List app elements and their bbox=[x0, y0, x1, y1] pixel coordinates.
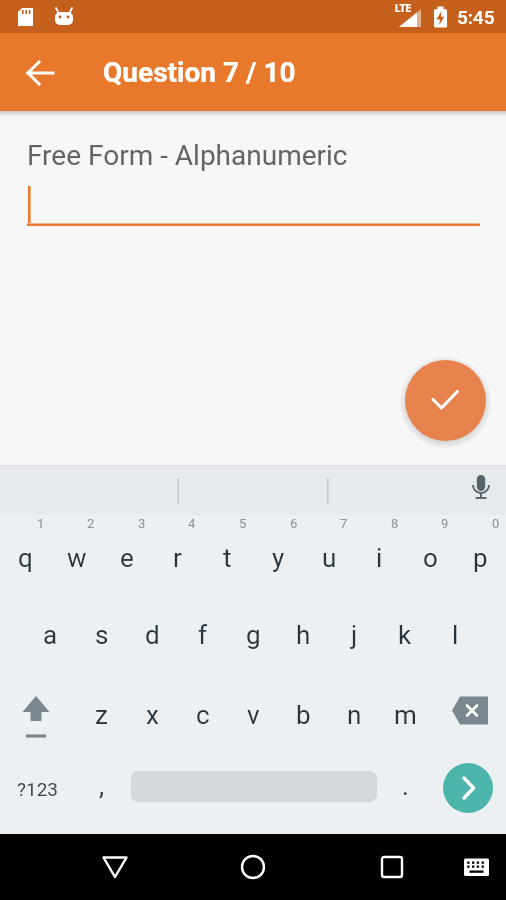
button[interactable]: d bbox=[127, 595, 178, 675]
staticText: 1 bbox=[37, 516, 45, 531]
button[interactable]: l bbox=[430, 595, 481, 675]
button[interactable]: s bbox=[76, 595, 127, 675]
staticText: y bbox=[272, 543, 285, 573]
staticText: n bbox=[347, 700, 362, 730]
staticText: 0 bbox=[492, 516, 500, 531]
staticText: j bbox=[351, 620, 358, 650]
staticText: w bbox=[67, 543, 87, 573]
button[interactable] bbox=[405, 360, 486, 441]
button[interactable]: ?123 bbox=[0, 749, 76, 829]
button[interactable]: m bbox=[380, 675, 431, 755]
button[interactable]: b bbox=[278, 675, 329, 755]
button[interactable]: i bbox=[354, 518, 405, 598]
staticText: 9 bbox=[441, 516, 449, 531]
staticText: 2 bbox=[87, 516, 95, 531]
button[interactable]: k bbox=[379, 595, 430, 675]
staticText: t bbox=[223, 543, 232, 573]
staticText: c bbox=[196, 700, 210, 730]
staticText: 8 bbox=[391, 516, 399, 531]
staticText: u bbox=[322, 543, 337, 573]
button[interactable]: r bbox=[152, 518, 203, 598]
button[interactable]: a bbox=[25, 595, 76, 675]
staticText: 5:45 bbox=[457, 6, 495, 28]
staticText: v bbox=[247, 700, 260, 730]
staticText: 4 bbox=[188, 516, 196, 531]
button[interactable] bbox=[16, 48, 64, 96]
staticText: s bbox=[95, 620, 109, 650]
button[interactable]: n bbox=[329, 675, 380, 755]
staticText: p bbox=[473, 543, 488, 573]
staticText: Free Form - Alphanumeric bbox=[27, 139, 348, 172]
staticText: Question 7 / 10 bbox=[103, 56, 296, 89]
button[interactable] bbox=[430, 675, 506, 755]
staticText: d bbox=[145, 620, 160, 650]
staticText: , bbox=[99, 771, 105, 801]
button[interactable]: z bbox=[76, 675, 127, 755]
staticText: 5 bbox=[239, 516, 247, 531]
staticText: i bbox=[376, 543, 383, 573]
button[interactable]: q bbox=[0, 518, 51, 598]
button[interactable]: , bbox=[76, 746, 127, 826]
button[interactable]: c bbox=[177, 675, 228, 755]
staticText: l bbox=[452, 620, 459, 650]
button[interactable]: f bbox=[177, 595, 228, 675]
staticText: k bbox=[398, 620, 412, 650]
staticText: e bbox=[120, 543, 134, 573]
staticText: 3 bbox=[138, 516, 146, 531]
button[interactable]: w bbox=[51, 518, 102, 598]
button[interactable]: . bbox=[380, 746, 431, 826]
staticText: r bbox=[173, 543, 182, 573]
button[interactable]: u bbox=[304, 518, 355, 598]
staticText: f bbox=[198, 620, 208, 650]
button[interactable] bbox=[229, 843, 277, 891]
button[interactable]: e bbox=[101, 518, 152, 598]
button[interactable]: h bbox=[278, 595, 329, 675]
staticText: b bbox=[296, 700, 311, 730]
button[interactable] bbox=[368, 843, 416, 891]
button[interactable]: y bbox=[253, 518, 304, 598]
staticText: o bbox=[423, 543, 438, 573]
button[interactable]: g bbox=[228, 595, 279, 675]
button[interactable]: j bbox=[329, 595, 380, 675]
button[interactable]: v bbox=[228, 675, 279, 755]
button[interactable]: o bbox=[405, 518, 456, 598]
staticText: z bbox=[95, 700, 108, 730]
staticText: a bbox=[43, 620, 58, 650]
button[interactable]: p bbox=[455, 518, 506, 598]
button[interactable] bbox=[91, 843, 139, 891]
staticText: h bbox=[296, 620, 311, 650]
staticText: g bbox=[246, 620, 261, 650]
button[interactable] bbox=[452, 843, 500, 891]
staticText: LTE bbox=[395, 3, 412, 15]
staticText: q bbox=[18, 543, 33, 573]
button[interactable]: t bbox=[202, 518, 253, 598]
staticText: 7 bbox=[340, 516, 348, 531]
staticText: x bbox=[146, 700, 159, 730]
button[interactable] bbox=[0, 675, 76, 755]
staticText: ?123 bbox=[17, 778, 59, 800]
button[interactable] bbox=[443, 763, 493, 813]
staticText: m bbox=[394, 700, 417, 730]
button[interactable]: x bbox=[127, 675, 178, 755]
staticText: 6 bbox=[290, 516, 298, 531]
staticText: . bbox=[402, 771, 409, 801]
